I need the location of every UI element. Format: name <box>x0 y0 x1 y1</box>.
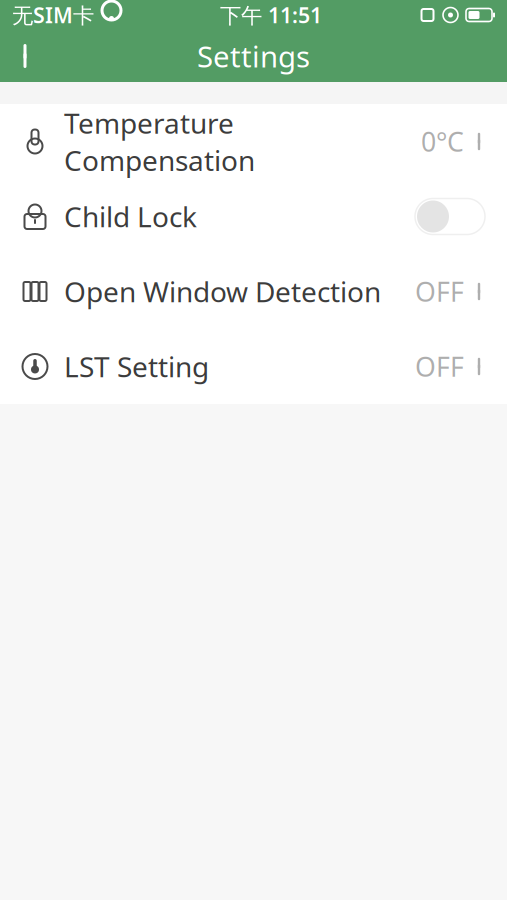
staticText: Temperature Compensation <box>64 104 255 179</box>
staticText: Settings <box>197 36 310 75</box>
button[interactable]: Open Window Detection <box>0 254 507 329</box>
staticText: OFF <box>415 274 464 309</box>
staticText: Open Window Detection <box>64 273 381 310</box>
staticText: 0°C <box>421 124 464 159</box>
staticText: Child Lock <box>64 198 197 235</box>
button[interactable]: Child Lock <box>0 179 507 254</box>
button[interactable]: Back <box>0 30 54 82</box>
staticText: OFF <box>415 349 464 384</box>
button[interactable]: LST Setting <box>0 329 507 404</box>
button[interactable]: Temperature Compensation <box>0 104 507 179</box>
staticText: 无SIM卡 <box>12 1 94 29</box>
staticText: 下午 11:51 <box>220 1 322 29</box>
staticText: LST Setting <box>64 348 209 385</box>
